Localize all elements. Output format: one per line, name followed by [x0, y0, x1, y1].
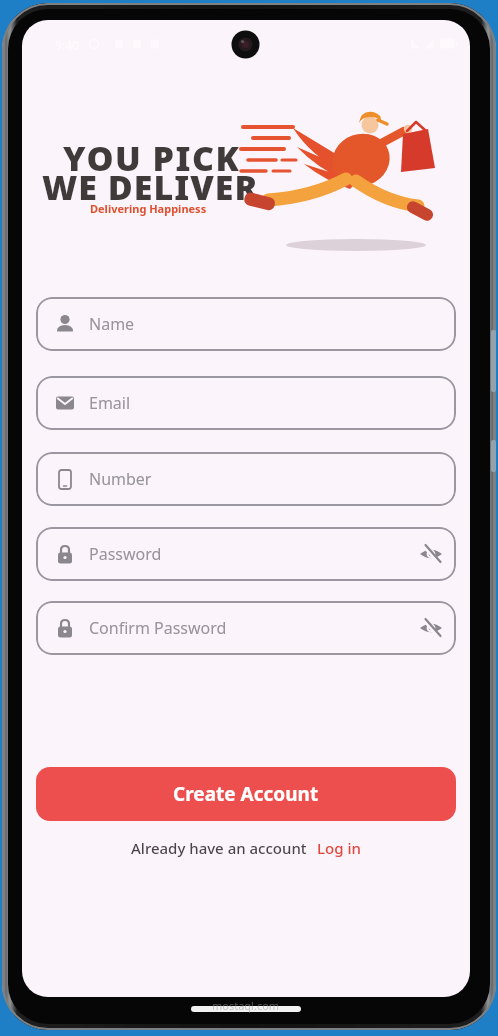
staticText: Name	[89, 313, 135, 335]
button[interactable]: Log in	[317, 838, 361, 858]
button[interactable]: Create Account	[36, 767, 456, 821]
staticText: Confirm Password	[89, 617, 227, 639]
staticText: Email	[89, 392, 131, 414]
staticText: Password	[89, 543, 162, 565]
staticText: Log in	[317, 838, 361, 858]
button[interactable]: Password	[36, 527, 456, 581]
staticText: Create Account	[173, 781, 319, 807]
button[interactable]: Name	[36, 297, 456, 351]
staticText: WE DELIVER	[42, 164, 259, 210]
staticText: Number	[89, 468, 152, 490]
button[interactable]: Confirm Password	[36, 601, 456, 655]
staticText: Already have an account	[131, 838, 307, 858]
button[interactable]: Email	[36, 376, 456, 430]
staticText: YOU PICK	[63, 135, 241, 181]
button[interactable]: Number	[36, 452, 456, 506]
staticText: Delivering Happiness	[90, 201, 207, 216]
staticText: mostaql.com	[212, 998, 280, 1013]
